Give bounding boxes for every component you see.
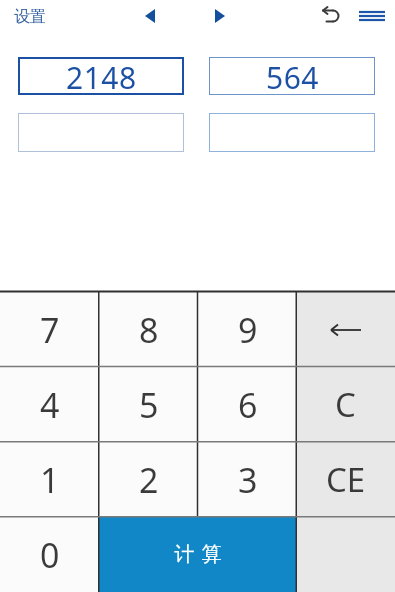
button[interactable]: 4 [0,367,99,442]
staticText: 计算 [171,542,225,567]
button[interactable] [18,113,184,152]
staticText: 4 [40,382,60,428]
button[interactable]: 3 [198,442,297,517]
button[interactable]: 8 [99,292,198,367]
staticText: 6 [238,382,258,428]
staticText: 9 [238,307,258,353]
button[interactable]: CE [296,442,395,517]
button[interactable]: 2 [99,442,198,517]
button[interactable] [204,0,236,32]
button[interactable]: 计算 [99,517,297,592]
button[interactable] [352,0,392,32]
button[interactable] [314,2,346,32]
staticText: 2 [139,457,159,503]
button[interactable]: 6 [198,367,297,442]
staticText: 8 [139,307,159,353]
button[interactable]: C [296,367,395,442]
button[interactable]: 2148 [18,57,184,95]
staticText: 0 [40,532,60,578]
button[interactable] [134,0,166,32]
staticText: C [335,382,356,427]
button[interactable]: 设置 [0,1,60,33]
button[interactable]: 1 [0,442,99,517]
button[interactable]: 7 [0,292,99,367]
staticText: 2148 [66,57,137,95]
staticText: 564 [266,57,319,95]
button[interactable]: 0 [0,517,99,592]
button[interactable] [296,517,395,592]
staticText: 1 [40,457,60,503]
staticText: 设置 [14,7,46,27]
button[interactable] [209,113,375,152]
staticText: 3 [238,457,258,503]
button[interactable]: 9 [198,292,297,367]
button[interactable]: 5 [99,367,198,442]
button[interactable]: 564 [209,57,375,95]
staticText: CE [326,457,366,502]
staticText: 5 [139,382,159,428]
staticText: 7 [40,307,60,353]
button[interactable] [296,292,395,367]
